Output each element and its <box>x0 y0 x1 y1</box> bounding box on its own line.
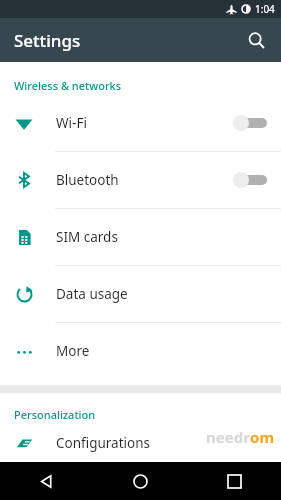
staticText: SIM cards <box>56 228 281 246</box>
button[interactable]: Data usage <box>0 266 281 322</box>
button[interactable]: Home <box>93 462 187 500</box>
button[interactable]: Bluetooth <box>0 152 281 208</box>
button[interactable] <box>233 115 267 131</box>
staticText: om <box>250 427 275 447</box>
button[interactable] <box>233 172 267 188</box>
button[interactable]: SIM cards <box>0 209 281 265</box>
staticText: Configurations <box>56 434 281 452</box>
button[interactable]: Search <box>239 23 273 57</box>
button[interactable]: Configurations <box>0 424 281 462</box>
button[interactable]: Recent apps <box>187 462 281 500</box>
staticText: More <box>56 342 281 360</box>
button[interactable]: More <box>0 323 281 379</box>
staticText: Settings <box>14 29 81 52</box>
staticText: Wi-Fi <box>56 114 233 132</box>
staticText: Personalization <box>14 407 96 422</box>
staticText: needr <box>206 427 250 447</box>
staticText: 1:04 <box>255 2 275 16</box>
button[interactable]: Back <box>0 462 93 500</box>
staticText: Bluetooth <box>56 171 233 189</box>
button[interactable]: Wi-Fi <box>0 95 281 151</box>
staticText: Wireless & networks <box>14 78 122 93</box>
staticText: Data usage <box>56 285 281 303</box>
